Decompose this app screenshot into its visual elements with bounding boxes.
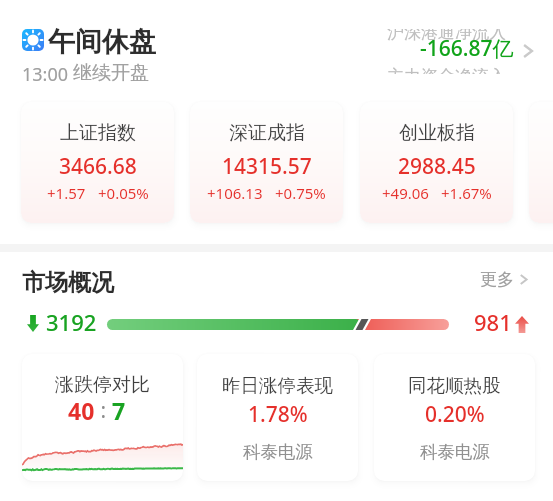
button[interactable]: 上证指数 xyxy=(21,102,174,223)
staticText: 3466.68 xyxy=(59,152,137,181)
button[interactable]: 沪深港通净流入 xyxy=(380,29,516,74)
staticText: 继续开盘 xyxy=(73,61,149,85)
staticText: 14315.57 xyxy=(222,152,312,181)
staticText: 7 xyxy=(112,395,126,426)
staticText: 同花顺热股 xyxy=(408,374,501,397)
staticText: 午间休盘 xyxy=(48,25,156,59)
staticText: 深证成指 xyxy=(229,121,305,145)
staticText: 科泰电源 xyxy=(243,441,313,463)
staticText: 更多 xyxy=(480,269,514,290)
button[interactable]: 昨日涨停表现 xyxy=(197,354,358,481)
staticText: +0.05% xyxy=(98,183,149,203)
staticText: 昨日涨停表现 xyxy=(222,374,333,397)
button[interactable]: 更多 xyxy=(480,269,529,290)
staticText: 40 xyxy=(68,395,95,426)
staticText: 0.20% xyxy=(425,400,485,429)
staticText: 上证指数 xyxy=(60,121,136,145)
button[interactable]: 同花顺热股 xyxy=(374,354,535,481)
staticText: 2988.45 xyxy=(398,152,476,181)
staticText: +0.75% xyxy=(275,183,326,203)
staticText: +49.06 xyxy=(382,183,429,203)
staticText: 创业板指 xyxy=(399,121,475,145)
staticText: +1.57 xyxy=(47,183,86,203)
button[interactable]: 科创50 xyxy=(529,102,553,223)
staticText: : xyxy=(95,396,112,425)
other: More capital flow xyxy=(521,42,535,60)
staticText: +1.67% xyxy=(441,183,492,203)
staticText: 市场概况 xyxy=(22,268,114,297)
staticText: 3192 xyxy=(46,307,97,335)
button[interactable]: 涨跌停对比 xyxy=(22,354,183,481)
staticText: 主力资金净流入 xyxy=(387,66,506,74)
staticText: 1.78% xyxy=(248,400,308,429)
staticText: 涨跌停对比 xyxy=(55,373,150,397)
button[interactable]: 创业板指 xyxy=(360,102,513,223)
staticText: -166.87亿 xyxy=(420,34,514,63)
staticText: 981 xyxy=(474,307,512,335)
staticText: 科泰电源 xyxy=(420,441,490,463)
staticText: 13:00 xyxy=(22,62,69,87)
staticText: +106.13 xyxy=(207,183,263,203)
button[interactable]: 深证成指 xyxy=(190,102,343,223)
staticText: 沪深港通净流入 xyxy=(387,29,506,43)
